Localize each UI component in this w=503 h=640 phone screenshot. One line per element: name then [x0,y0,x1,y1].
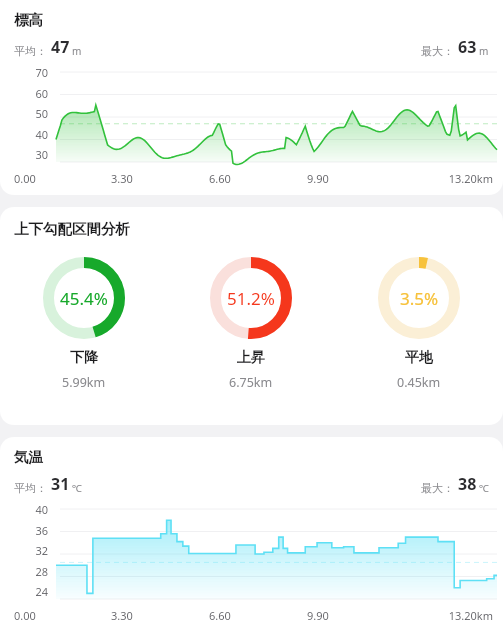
button[interactable]: 3.5% [335,256,503,391]
staticText: 3.5% [400,287,439,310]
staticText: 平均： [14,44,47,58]
staticText: ℃ [72,481,82,495]
staticText: m [479,44,489,58]
staticText: 気温 [14,448,43,466]
staticText: 3.30 [111,171,209,186]
staticText: 32 [0,543,48,558]
staticText: ℃ [479,481,489,495]
staticText: 6.75km [229,374,273,391]
staticText: 50 [0,106,48,121]
staticText: 31 [51,473,70,495]
staticText: 9.90 [307,171,405,186]
staticText: 24 [0,584,48,599]
staticText: 3.30 [111,608,209,623]
button[interactable]: 気温 [0,437,503,640]
staticText: 平均： [14,481,47,495]
staticText: 5.99km [62,374,106,391]
staticText: 38 [458,473,477,495]
staticText: 6.60 [209,608,307,623]
staticText: 30 [0,147,48,162]
staticText: 45.4% [60,287,108,310]
staticText: 63 [458,36,477,58]
staticText: 60 [0,86,48,101]
staticText: 0.00 [14,608,111,623]
staticText: 0.45km [397,374,441,391]
staticText: 9.90 [307,608,405,623]
button[interactable]: 45.4% [0,256,167,391]
staticText: 47 [51,36,70,58]
staticText: 70 [0,65,48,80]
staticText: 40 [0,502,48,517]
staticText: 40 [0,127,48,142]
button[interactable]: 標高 [0,0,503,195]
staticText: 上下勾配区間分析 [14,220,130,238]
staticText: 上昇 [237,349,265,367]
staticText: 0.00 [14,171,111,186]
staticText: 最大： [421,44,454,58]
staticText: 36 [0,523,48,538]
staticText: 51.2% [227,287,275,310]
staticText: 6.60 [209,171,307,186]
staticText: 標高 [14,11,43,29]
staticText: 13.20km [405,171,493,186]
button[interactable]: 51.2% [167,256,335,391]
staticText: 下降 [70,349,98,367]
staticText: 最大： [421,481,454,495]
staticText: m [72,44,82,58]
staticText: 28 [0,564,48,579]
staticText: 平地 [405,349,433,367]
staticText: 13.20km [405,608,493,623]
